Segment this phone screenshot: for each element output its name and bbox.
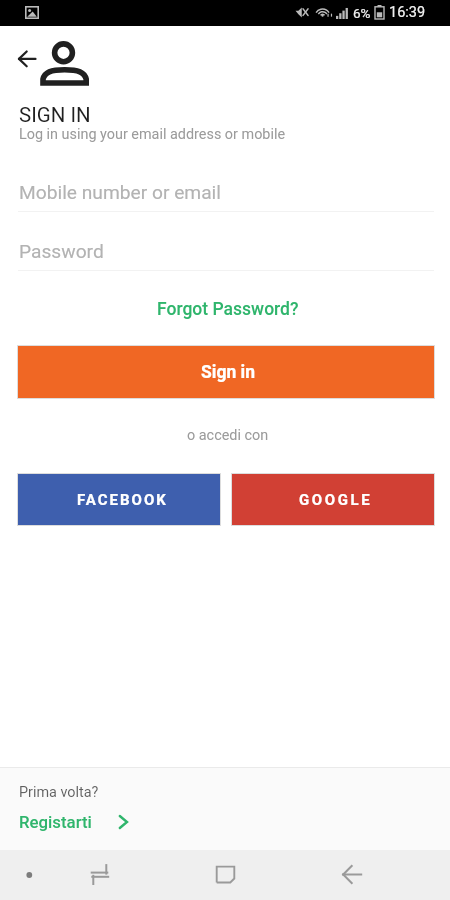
- staticText: Prima volta?: [19, 784, 99, 801]
- staticText: o accedi con: [187, 427, 269, 444]
- button[interactable]: FACEBOOK: [18, 474, 220, 525]
- button[interactable]: Sign in: [18, 346, 434, 398]
- staticText: SIGN IN: [19, 103, 91, 127]
- staticText: Forgot Password?: [157, 299, 299, 320]
- staticText: GOOGLE: [299, 491, 373, 509]
- staticText: Password: [19, 240, 104, 263]
- staticText: Sign in: [201, 362, 255, 383]
- button[interactable]: Forgot Password?: [151, 296, 305, 323]
- staticText: Mobile number or email: [19, 181, 221, 204]
- staticText: 6%: [353, 5, 371, 21]
- button[interactable]: Recent apps: [86, 862, 112, 888]
- staticText: 16:39: [389, 4, 426, 21]
- staticText: Registarti: [19, 812, 92, 832]
- button[interactable]: Home: [212, 862, 238, 888]
- staticText: FACEBOOK: [77, 491, 168, 509]
- button[interactable]: GOOGLE: [232, 474, 434, 525]
- staticText: Log in using your email address or mobil…: [19, 126, 286, 143]
- button[interactable]: Registarti: [19, 812, 128, 832]
- button[interactable]: Back: [10, 44, 40, 74]
- button[interactable]: Back: [338, 862, 364, 888]
